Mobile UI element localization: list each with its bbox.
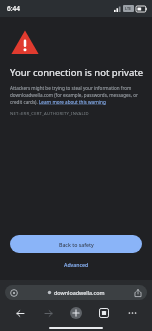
- button[interactable]: Back to safety: [10, 235, 142, 253]
- staticText: LTE: [125, 6, 132, 11]
- staticText: Back to safety: [59, 241, 94, 248]
- staticText: Attackers might be trying to steal your …: [10, 85, 142, 105]
- button[interactable]: Switch tabs: [90, 303, 118, 323]
- staticText: Your connection is not private: [10, 66, 144, 79]
- button[interactable]: Search with camera: [5, 285, 147, 300]
- button[interactable]: Forward: [34, 303, 62, 323]
- staticText: downloadwella.com: [54, 289, 105, 296]
- button[interactable]: New tab: [62, 303, 90, 323]
- staticText: NET::ERR_CERT_AUTHORITY_INVALID: [10, 111, 89, 117]
- staticText: 6:44: [7, 4, 20, 13]
- button[interactable]: Back: [6, 303, 34, 323]
- staticText: Advanced: [64, 261, 89, 268]
- other: Search with camera: [9, 288, 19, 298]
- button[interactable]: Advanced: [54, 257, 99, 272]
- other: Share: [132, 287, 143, 298]
- button[interactable]: More options: [118, 303, 146, 323]
